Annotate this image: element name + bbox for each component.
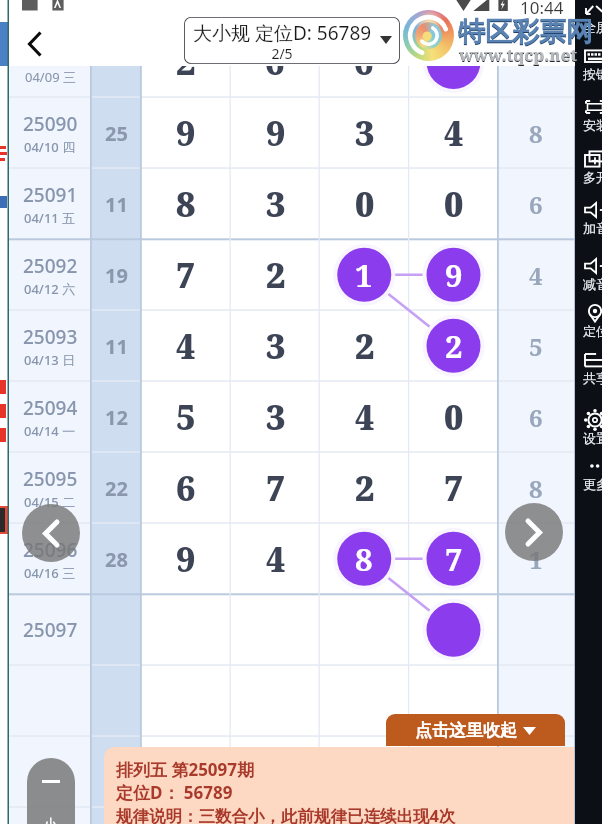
staticText: 安装	[583, 117, 602, 133]
staticText: 5	[529, 330, 543, 362]
button[interactable]: 大小规 定位D: 56789	[184, 17, 400, 64]
staticText: 2	[176, 39, 196, 85]
staticText: 更多	[583, 476, 602, 492]
staticText: 特区彩票网	[458, 15, 593, 49]
staticText: 8	[529, 117, 543, 149]
staticText: 特区彩票网	[458, 16, 593, 50]
staticText: 6	[529, 401, 543, 433]
staticText: 大小规 定位D: 56789	[193, 20, 372, 46]
button[interactable]: Back	[14, 24, 54, 64]
staticText: www.tqcp.net	[459, 43, 578, 66]
staticText: 2/5	[184, 44, 380, 63]
staticText: 28	[105, 546, 128, 573]
staticText: 4	[266, 536, 286, 582]
staticText: 3	[266, 181, 286, 227]
staticText: 4	[355, 394, 375, 440]
staticText: 按键	[583, 66, 602, 82]
staticText: 7	[266, 465, 286, 511]
staticText: 6	[529, 188, 543, 220]
button[interactable]: 更多	[575, 456, 602, 500]
staticText: 规律说明：三数合小，此前规律已连续出现4次	[116, 804, 456, 824]
staticText: 25090	[23, 111, 78, 137]
staticText: 8	[529, 472, 543, 504]
staticText: 2	[445, 325, 463, 367]
staticText: 定位D： 56789	[116, 781, 233, 804]
staticText: 加音	[583, 220, 602, 236]
staticText: 3	[355, 110, 375, 156]
staticText: 04/09 三	[25, 68, 76, 86]
staticText: 7	[176, 252, 196, 298]
staticText: 04/15 二	[24, 493, 76, 511]
button[interactable]: Zoom out	[27, 758, 75, 824]
staticText: 4	[529, 259, 543, 291]
staticText: 8	[176, 181, 196, 227]
staticText: 25097	[23, 617, 78, 643]
staticText: 1	[355, 254, 373, 296]
staticText: 04/13 日	[24, 351, 76, 369]
button[interactable]: 多开	[575, 149, 602, 193]
staticText: 6	[265, 39, 285, 85]
staticText: 2	[266, 252, 286, 298]
staticText: 9	[176, 536, 196, 582]
staticText: 0	[355, 181, 375, 227]
button[interactable]: 全屏	[575, 0, 602, 43]
staticText: 12	[105, 404, 128, 431]
staticText: 5	[176, 394, 196, 440]
staticText: 1	[529, 543, 543, 575]
staticText: 小	[43, 816, 58, 824]
staticText: 0	[444, 181, 464, 227]
button[interactable]: 加音	[575, 200, 602, 244]
button[interactable]: 共享	[575, 350, 602, 394]
staticText: 22	[105, 475, 128, 502]
staticText: 3	[266, 323, 286, 369]
staticText: 定位	[583, 323, 602, 339]
button[interactable]: 定位	[575, 303, 602, 347]
staticText: 04/10 四	[24, 138, 76, 156]
button[interactable]: 安装	[575, 97, 602, 141]
button[interactable]: 点击这里收起	[386, 714, 565, 746]
staticText: 7	[444, 465, 464, 511]
staticText: 9	[176, 110, 196, 156]
staticText: 多开	[583, 169, 602, 185]
staticText: 25093	[23, 324, 78, 350]
staticText: 点击这里收起	[415, 720, 517, 741]
staticText: 减音	[583, 276, 602, 292]
staticText: 19	[105, 262, 128, 289]
staticText: 2	[355, 465, 375, 511]
staticText: 6	[354, 39, 374, 85]
button[interactable]: 减音	[575, 256, 602, 300]
staticText: 设置	[583, 430, 602, 446]
staticText: 4	[176, 323, 196, 369]
staticText: 04/14 一	[24, 422, 76, 440]
button[interactable]: Previous page	[22, 504, 80, 562]
staticText: 4	[444, 110, 464, 156]
staticText: 11	[105, 333, 128, 360]
staticText: 25094	[23, 395, 78, 421]
staticText: 04/11 五	[24, 209, 76, 227]
staticText: 9	[445, 254, 463, 296]
button[interactable]: Next page	[505, 503, 563, 561]
staticText: 25092	[23, 253, 78, 279]
staticText: 11	[105, 191, 128, 218]
staticText: 04/12 六	[24, 280, 76, 298]
button[interactable]: 设置	[575, 410, 602, 454]
staticText: 共享	[583, 370, 602, 386]
staticText: 2	[355, 323, 375, 369]
button[interactable]: 按键	[575, 46, 602, 90]
staticText: 04/16 三	[24, 564, 76, 582]
staticText: 7	[445, 538, 463, 580]
staticText: 10:44	[520, 0, 564, 19]
staticText: 0	[444, 394, 464, 440]
staticText: 25095	[23, 466, 78, 492]
staticText: 3	[266, 394, 286, 440]
staticText: 全屏	[583, 19, 602, 35]
staticText: 25096	[23, 537, 78, 563]
staticText: 25091	[23, 182, 78, 208]
staticText: 9	[266, 110, 286, 156]
staticText: 6	[176, 465, 196, 511]
staticText: www.tqcp.net	[459, 44, 578, 67]
staticText: 8	[355, 538, 373, 580]
staticText: 排列五 第25097期	[116, 758, 255, 781]
staticText: 25	[105, 120, 128, 147]
